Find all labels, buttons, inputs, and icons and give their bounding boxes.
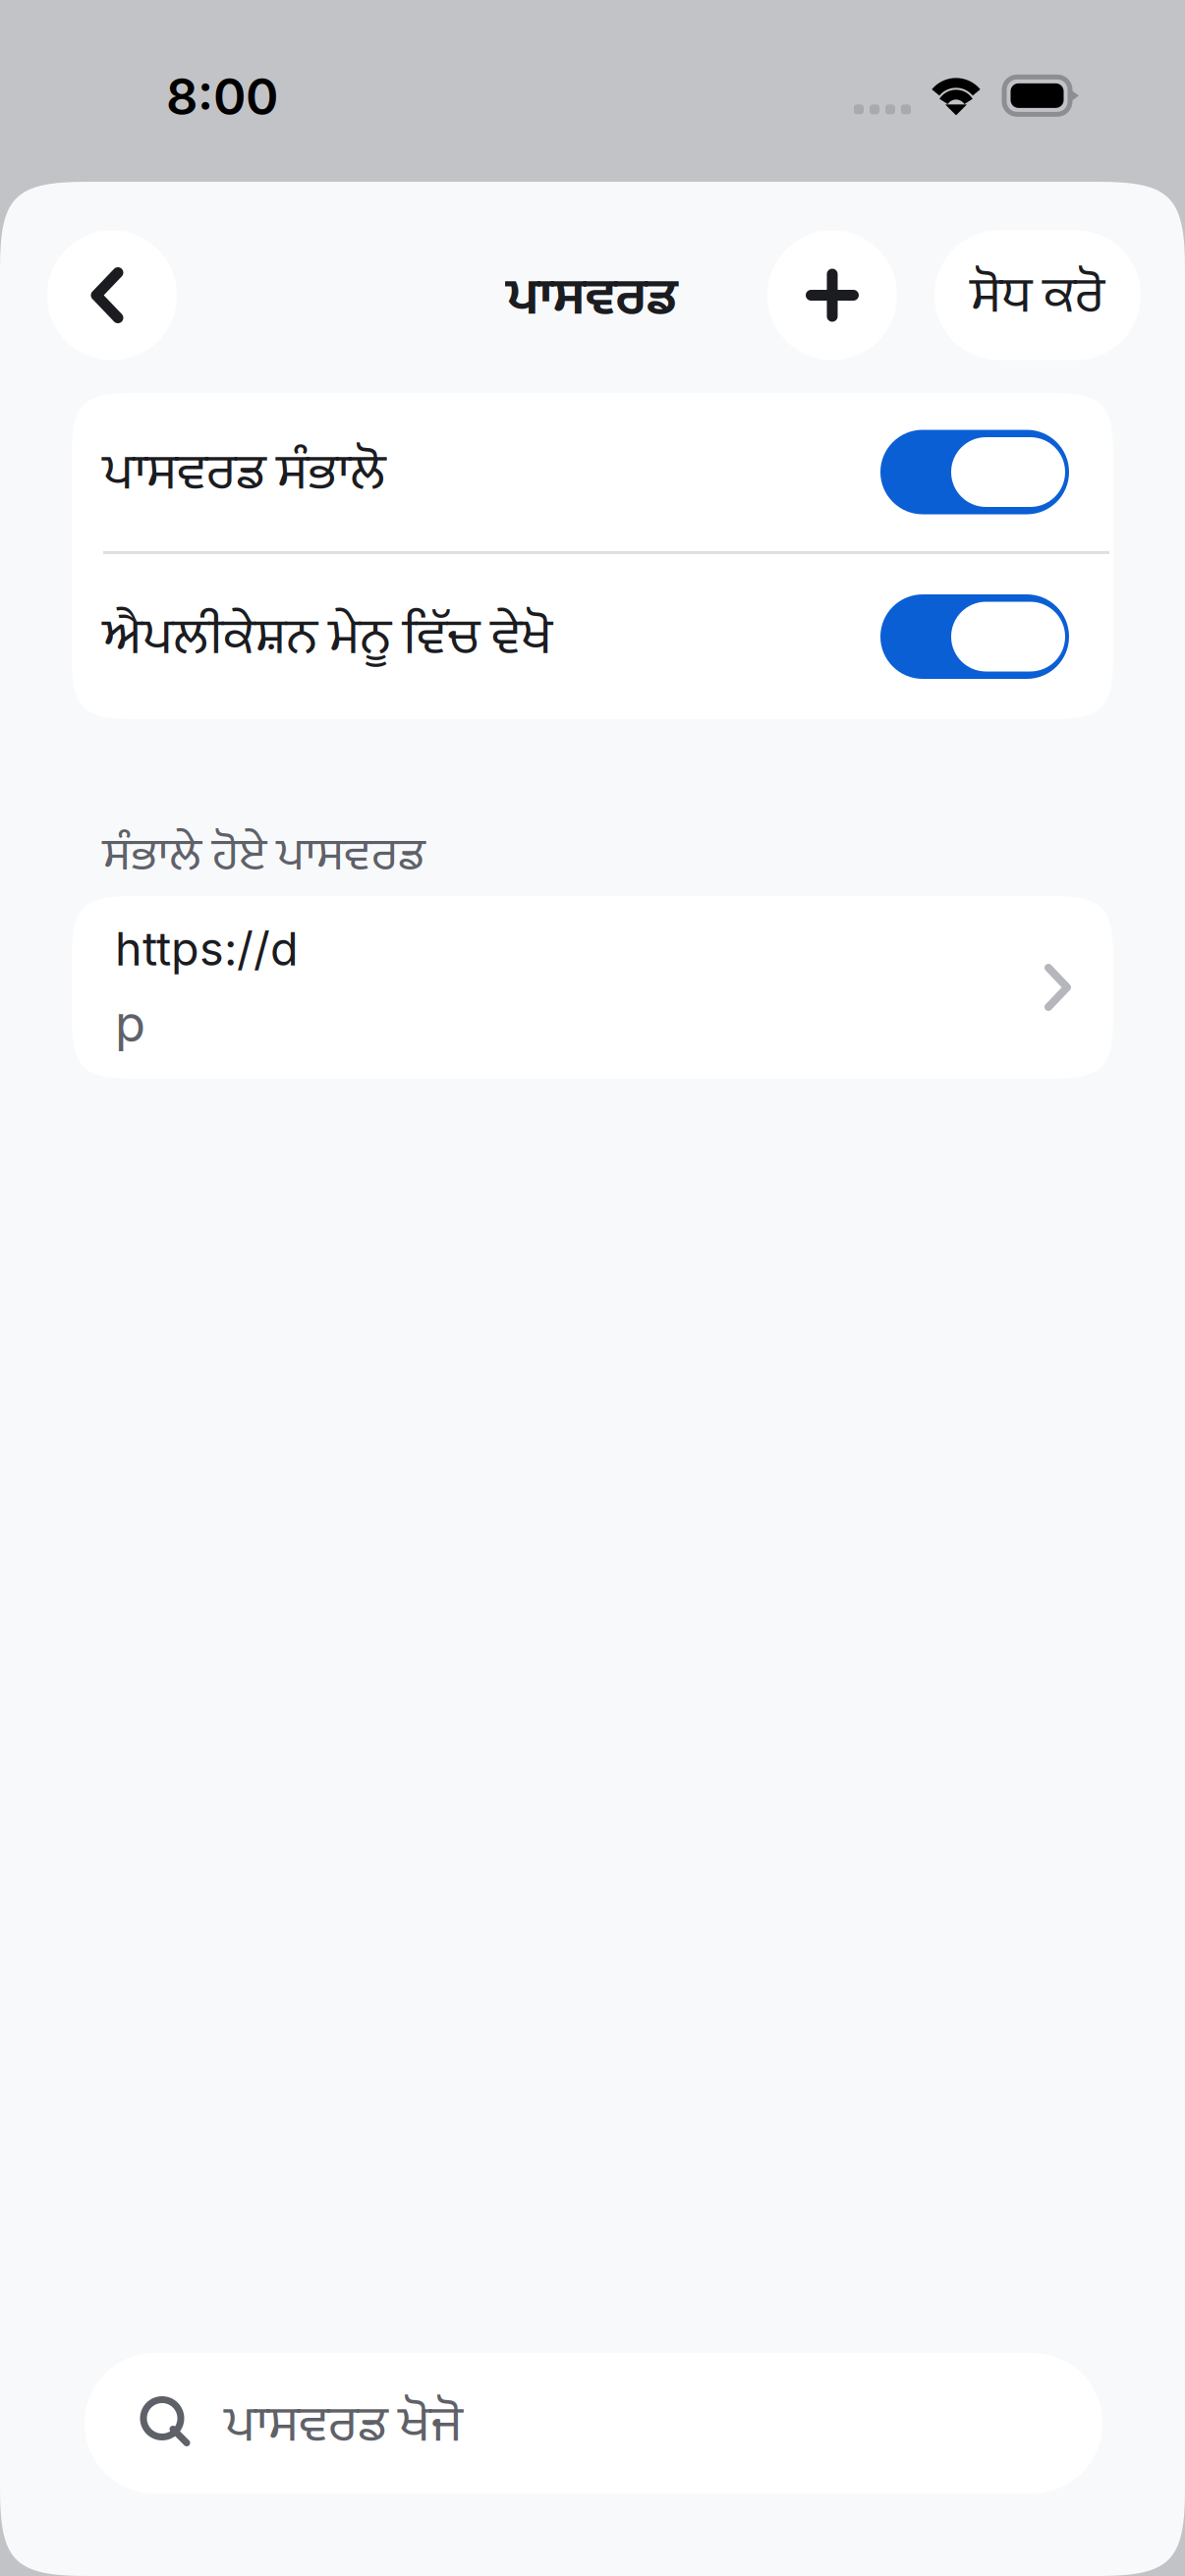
staticText: ਪਾਸਵਰਡ ਖੋਜੋ (225, 2379, 463, 2470)
staticText: https://d (115, 921, 299, 977)
staticText: p (115, 993, 145, 1054)
button[interactable]: ਪਾਸਵਰਡ ਸੰਭਾਲੋ (72, 393, 1113, 551)
staticText: ਪਾਸਵਰਡ (507, 252, 677, 343)
button[interactable]: Back (47, 230, 177, 360)
button[interactable]: https://d (72, 896, 1113, 1079)
button[interactable]: ਐਪਲੀਕੇਸ਼ਨ ਮੇਨੂ ਵਿੱਚ ਵੇਖੋ (72, 554, 1113, 719)
staticText: ਸੰਭਾਲੇ ਹੋਏ ਪਾਸਵਰਡ (103, 813, 424, 896)
button[interactable]: ਪਾਸਵਰਡ ਖੋਜੋ (85, 2353, 1102, 2493)
staticText: 8:00 (166, 67, 278, 127)
staticText: ਪਾਸਵਰਡ ਸੰਭਾਲੋ (103, 426, 386, 518)
staticText: ਐਪਲੀਕੇਸ਼ਨ ਮੇਨੂ ਵਿੱਚ ਵੇਖੋ (103, 591, 552, 682)
button[interactable]: Add password (767, 230, 897, 360)
button[interactable]: ਸੋਧ ਕਰੋ (934, 230, 1141, 360)
staticText: ਸੋਧ ਕਰੋ (971, 250, 1104, 341)
